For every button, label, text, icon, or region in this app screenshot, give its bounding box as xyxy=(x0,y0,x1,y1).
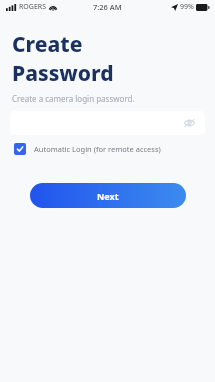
button[interactable]: Next xyxy=(30,183,186,208)
staticText: 99% xyxy=(180,2,194,12)
staticText: Automatic Login (for remote access) xyxy=(34,144,161,154)
staticText: Create a camera login password. xyxy=(12,93,135,104)
staticText: Next xyxy=(97,190,119,202)
button[interactable]: Show password xyxy=(182,116,196,130)
staticText: Password xyxy=(12,59,114,88)
button[interactable]: Show password xyxy=(10,111,205,135)
staticText: Create xyxy=(12,30,83,59)
staticText: 7:26 AM xyxy=(93,2,122,12)
button[interactable]: Automatic Login (for remote access) xyxy=(14,143,201,155)
staticText: ROGERS xyxy=(19,2,47,12)
